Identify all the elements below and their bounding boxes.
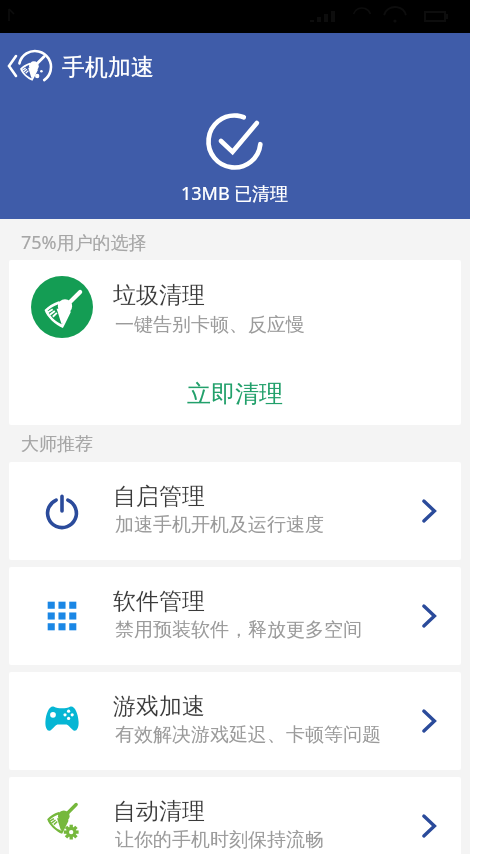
staticText: 自动清理	[113, 797, 205, 826]
staticText: 13MB 已清理	[181, 181, 289, 206]
staticText: 加速手机开机及运行速度	[115, 513, 324, 537]
staticText: 75%用户的选择	[21, 230, 147, 255]
staticText: 大师推荐	[21, 433, 93, 456]
staticText: 软件管理	[113, 587, 205, 616]
staticText: 禁用预装软件，释放更多空间	[115, 618, 362, 642]
staticText: 手机加速	[62, 53, 154, 82]
staticText: 自启管理	[113, 482, 205, 511]
button[interactable]: 自启管理	[9, 462, 461, 560]
staticText: 让你的手机时刻保持流畅	[115, 828, 324, 852]
staticText: 有效解决游戏延迟、卡顿等问题	[115, 723, 381, 747]
staticText: 垃圾清理	[113, 281, 205, 310]
button[interactable]: 立即清理	[9, 365, 461, 423]
staticText: 一键告别卡顿、反应慢	[115, 313, 305, 337]
staticText: 游戏加速	[113, 692, 205, 721]
staticText: 立即清理	[187, 379, 283, 409]
button[interactable]: 游戏加速	[9, 672, 461, 770]
button[interactable]: 自动清理	[9, 777, 461, 854]
button[interactable]: 软件管理	[9, 567, 461, 665]
button[interactable]: Back	[0, 36, 56, 98]
